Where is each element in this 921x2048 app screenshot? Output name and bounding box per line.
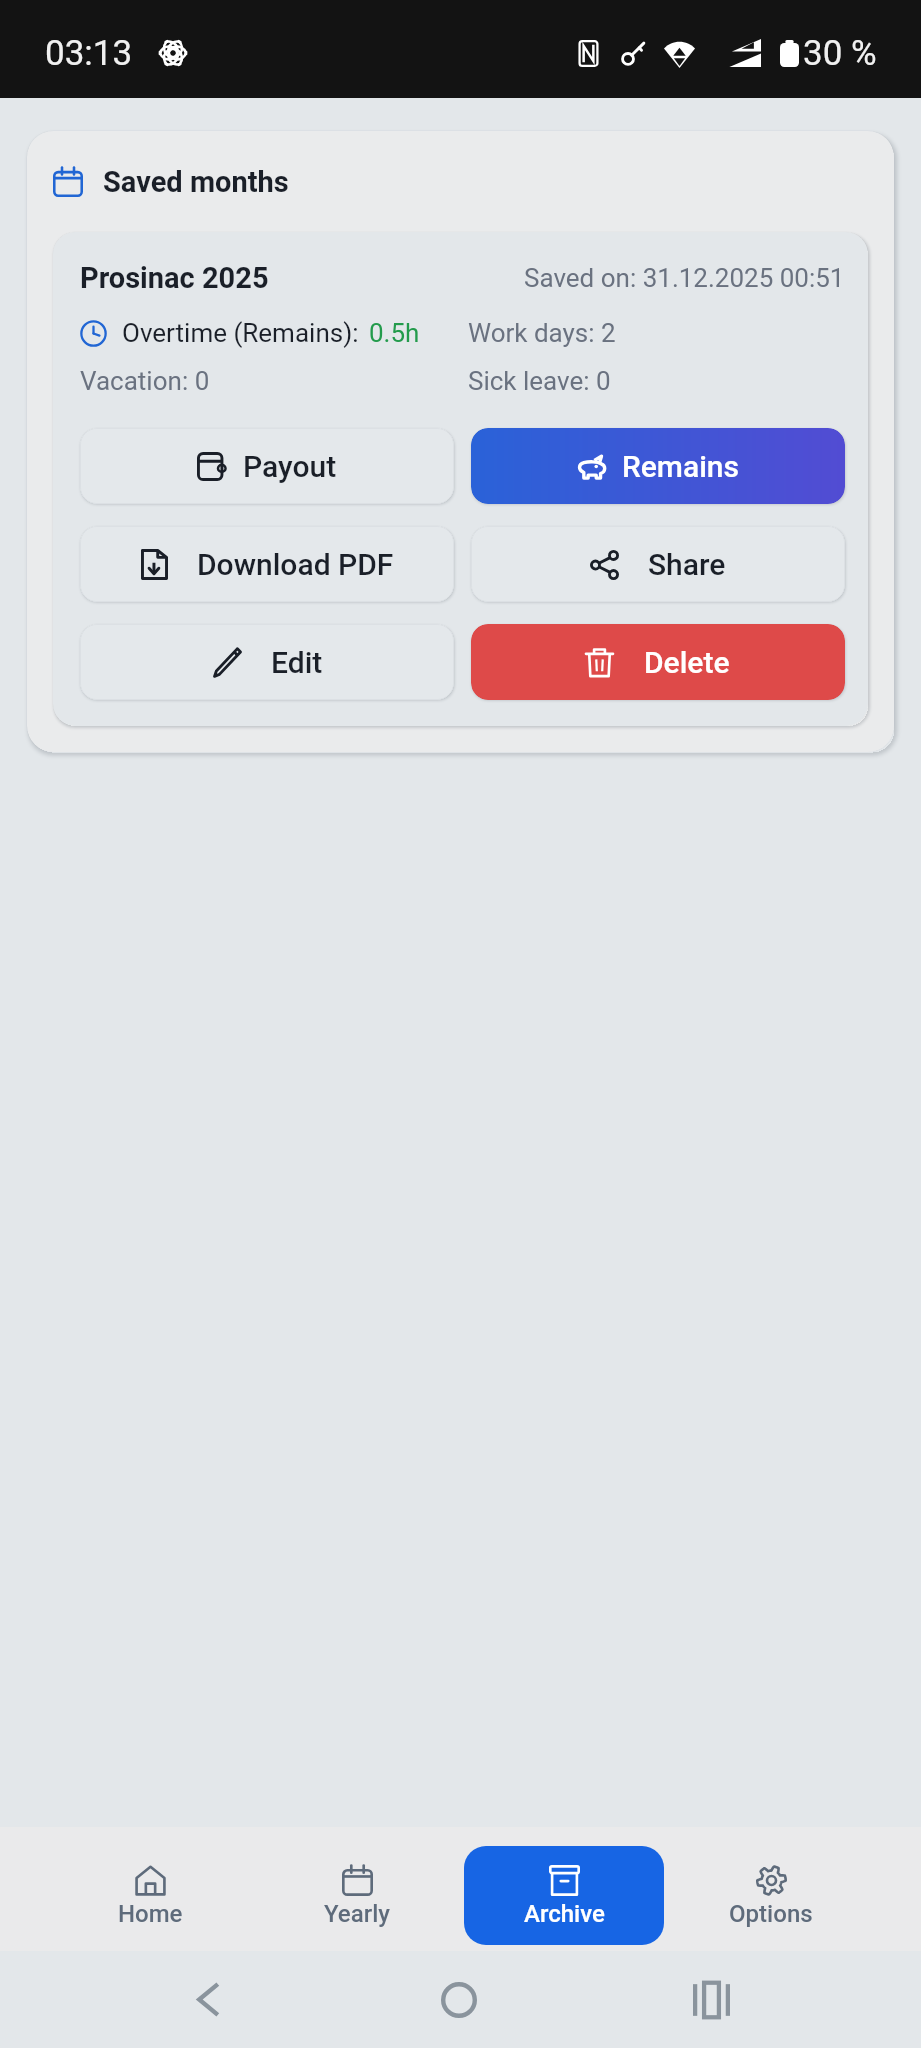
- button[interactable]: Options: [671, 1846, 871, 1945]
- button[interactable]: Payout: [80, 428, 454, 504]
- staticText: Payout: [243, 449, 337, 484]
- staticText: Overtime (Remains):: [122, 318, 359, 348]
- button[interactable]: Yearly: [257, 1846, 457, 1945]
- button[interactable]: Back: [165, 1951, 251, 2048]
- staticText: 30 %: [803, 33, 877, 74]
- button[interactable]: Recents: [668, 1951, 754, 2048]
- staticText: Share: [648, 547, 726, 582]
- staticText: Prosinac 2025: [80, 261, 269, 295]
- staticText: Remains: [622, 449, 740, 484]
- button[interactable]: Download PDF: [80, 526, 454, 602]
- staticText: Saved on: 31.12.2025 00:51: [524, 263, 845, 293]
- button[interactable]: Edit: [80, 624, 454, 700]
- staticText: Vacation: 0: [80, 366, 210, 396]
- button[interactable]: Remains: [471, 428, 845, 504]
- button[interactable]: Home: [50, 1846, 250, 1945]
- staticText: Saved months: [103, 165, 289, 199]
- staticText: Delete: [644, 645, 730, 680]
- button[interactable]: Archive: [464, 1846, 664, 1945]
- staticText: Download PDF: [197, 547, 394, 582]
- button[interactable]: Home: [416, 1951, 502, 2048]
- staticText: 0.5h: [369, 318, 420, 348]
- staticText: Home: [118, 1900, 183, 1928]
- staticText: Sick leave: 0: [468, 366, 611, 396]
- staticText: Work days: 2: [468, 318, 616, 348]
- button[interactable]: Share: [471, 526, 845, 602]
- staticText: Archive: [524, 1900, 605, 1928]
- staticText: Options: [729, 1900, 813, 1928]
- staticText: Yearly: [324, 1900, 390, 1928]
- staticText: Edit: [271, 645, 323, 680]
- staticText: 03:13: [45, 33, 133, 74]
- button[interactable]: Delete: [471, 624, 845, 700]
